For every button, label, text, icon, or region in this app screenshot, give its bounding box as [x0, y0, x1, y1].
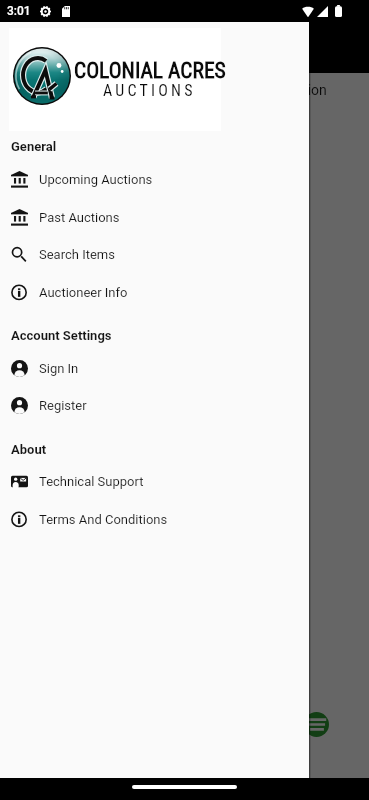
staticText: About [11, 442, 47, 457]
button[interactable]: Auctioneer Info [0, 273, 309, 311]
staticText: AUCTIONS [103, 81, 196, 100]
staticText: Upcoming Auction [212, 82, 327, 98]
button[interactable]: Sort auctions [304, 712, 329, 737]
staticText: Past Auctions [39, 210, 120, 225]
button[interactable]: Terms And Conditions [0, 500, 309, 538]
staticText: Upcoming Auctions [39, 172, 153, 187]
staticText: Terms And Conditions [39, 512, 168, 527]
staticText: Account Settings [11, 328, 112, 343]
staticText: Technical Support [39, 474, 144, 489]
staticText: Auctioneer Info [39, 285, 128, 300]
staticText: 3:01 [7, 4, 31, 18]
button[interactable]: Past Auctions [0, 198, 309, 236]
button[interactable]: Sign In [0, 349, 309, 387]
button[interactable]: Technical Support [0, 462, 309, 500]
button[interactable]: Search Items [0, 235, 309, 273]
staticText: Search Items [39, 247, 115, 262]
staticText: COLONIAL ACRES [74, 58, 226, 83]
button[interactable]: Register [0, 386, 309, 424]
button[interactable]: Upcoming Auctions [0, 160, 309, 198]
staticText: Sign In [39, 361, 79, 376]
staticText: Register [39, 398, 87, 413]
staticText: General [11, 139, 57, 154]
